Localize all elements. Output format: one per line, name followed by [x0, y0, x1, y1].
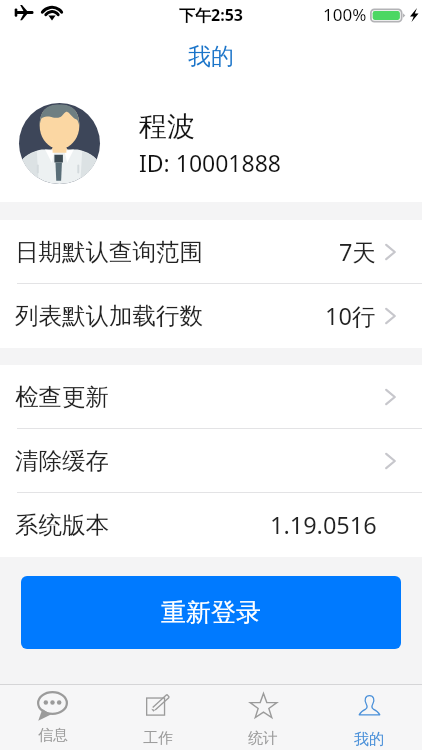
- staticText: 我的: [354, 730, 384, 749]
- button[interactable]: 我的: [316, 685, 422, 750]
- button[interactable]: 工作: [105, 685, 210, 750]
- button[interactable]: 检查更新: [0, 365, 422, 429]
- staticText: 工作: [143, 729, 173, 748]
- button[interactable]: 日期默认查询范围: [0, 220, 422, 284]
- staticText: 下午2:53: [179, 4, 243, 26]
- staticText: 列表默认加载行数: [15, 301, 203, 331]
- staticText: 1.19.0516: [270, 509, 377, 541]
- staticText: 日期默认查询范围: [15, 237, 203, 267]
- staticText: 检查更新: [15, 382, 109, 412]
- staticText: 100%: [323, 3, 367, 26]
- staticText: 清除缓存: [15, 446, 109, 476]
- staticText: ID: 10001888: [139, 147, 281, 178]
- staticText: 程波: [139, 109, 195, 144]
- button[interactable]: 系统版本: [0, 493, 422, 557]
- staticText: 信息: [38, 726, 68, 745]
- staticText: 7天: [339, 236, 376, 268]
- button[interactable]: 程波: [0, 85, 422, 202]
- staticText: 10行: [325, 300, 376, 332]
- button[interactable]: 信息: [0, 685, 105, 750]
- button[interactable]: 清除缓存: [0, 429, 422, 493]
- button[interactable]: 重新登录: [21, 576, 401, 649]
- staticText: 系统版本: [15, 510, 109, 540]
- button[interactable]: 统计: [210, 685, 316, 750]
- button[interactable]: 列表默认加载行数: [0, 284, 422, 348]
- staticText: 重新登录: [161, 597, 261, 628]
- staticText: 我的: [188, 42, 234, 71]
- staticText: 统计: [248, 729, 278, 748]
